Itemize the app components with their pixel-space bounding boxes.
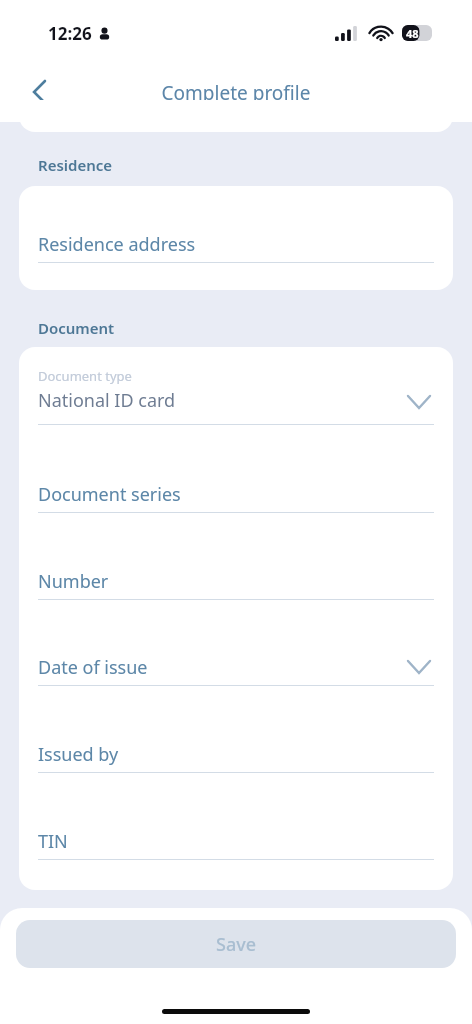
button[interactable]: Save xyxy=(16,920,456,968)
staticText: Document series xyxy=(38,482,181,507)
staticText: Document type xyxy=(38,367,132,385)
staticText: Residence xyxy=(38,155,113,175)
staticText: 12:26 xyxy=(48,22,92,45)
button[interactable]: Number xyxy=(19,559,453,615)
staticText: TIN xyxy=(38,829,68,854)
staticText: Issued by xyxy=(38,742,119,767)
staticText: Residence address xyxy=(38,232,196,257)
staticText: National ID card xyxy=(38,388,176,413)
staticText: Number xyxy=(38,569,109,594)
staticText: Complete profile xyxy=(0,80,472,106)
button[interactable]: Document type xyxy=(19,364,453,434)
staticText: Document xyxy=(38,318,115,338)
button[interactable]: Back xyxy=(16,69,62,115)
button[interactable]: Date of issue xyxy=(19,645,453,701)
button[interactable]: Issued by xyxy=(19,732,453,788)
button[interactable]: Document series xyxy=(19,472,453,528)
button[interactable]: TIN xyxy=(19,819,453,875)
button[interactable]: Residence address xyxy=(19,222,453,278)
staticText: Date of issue xyxy=(38,655,148,680)
staticText: 48 xyxy=(406,26,419,41)
staticText: Save xyxy=(216,932,257,957)
